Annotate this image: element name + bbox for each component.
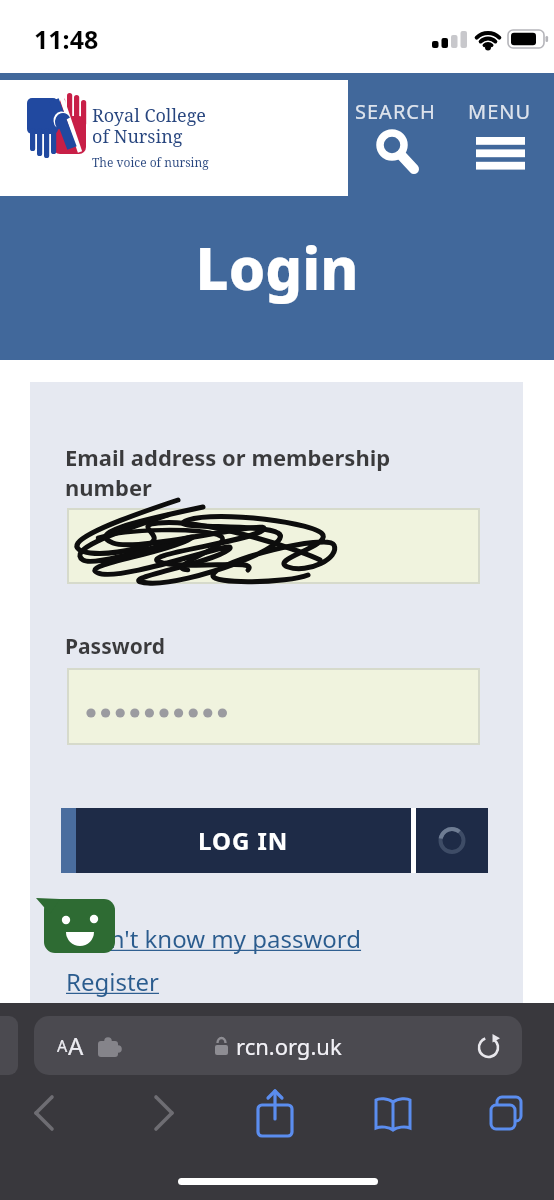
staticText: 11:48	[34, 22, 99, 56]
button[interactable]: SEARCH	[355, 98, 436, 183]
button[interactable]: A	[34, 1016, 522, 1075]
staticText: Email address or membership number	[65, 442, 391, 503]
button[interactable]: Royal College of Nursing	[0, 80, 348, 196]
button[interactable]: Register	[66, 965, 160, 998]
button[interactable]	[36, 896, 116, 958]
staticText: Password	[65, 632, 166, 661]
staticText: A	[57, 1035, 68, 1057]
staticText: A	[68, 1029, 84, 1062]
button[interactable]: MENU	[468, 98, 532, 177]
button[interactable]	[67, 668, 480, 745]
staticText: Login	[0, 228, 554, 307]
staticText: The voice of nursing	[92, 154, 209, 170]
staticText: SEARCH	[355, 98, 436, 125]
staticText: LOG IN	[198, 824, 289, 857]
staticText: rcn.org.uk	[236, 1031, 342, 1061]
staticText: MENU	[468, 98, 532, 125]
button[interactable]	[481, 1090, 531, 1136]
button[interactable]	[368, 1090, 418, 1136]
button[interactable]: LOG IN	[61, 808, 488, 873]
staticText: Royal College of Nursing	[92, 103, 206, 148]
button[interactable]: I don't know my password	[66, 922, 362, 955]
button[interactable]	[250, 1088, 300, 1138]
button[interactable]	[67, 508, 480, 584]
button[interactable]	[18, 1090, 68, 1136]
button[interactable]	[139, 1090, 189, 1136]
